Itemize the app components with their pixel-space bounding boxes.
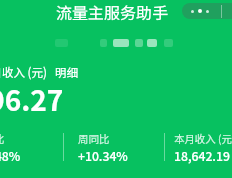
staticText: 流量主服务助手 — [0, 0, 228, 22]
staticText: +10.34% — [78, 147, 128, 165]
staticText: 18,642.19 — [174, 147, 230, 165]
staticText: -13.48% — [0, 147, 21, 165]
button[interactable]: 明细 — [55, 64, 78, 81]
staticText: 1,296.27 — [0, 79, 64, 120]
staticText: 日环比 — [0, 131, 5, 146]
button[interactable]: 流量主服务助手 — [0, 0, 228, 22]
staticText: 周同比 — [78, 131, 110, 146]
staticText: 昨日收入 (元) — [0, 64, 47, 81]
button[interactable]: More options — [182, 3, 232, 19]
staticText: 本月收入 (元) — [174, 131, 232, 146]
